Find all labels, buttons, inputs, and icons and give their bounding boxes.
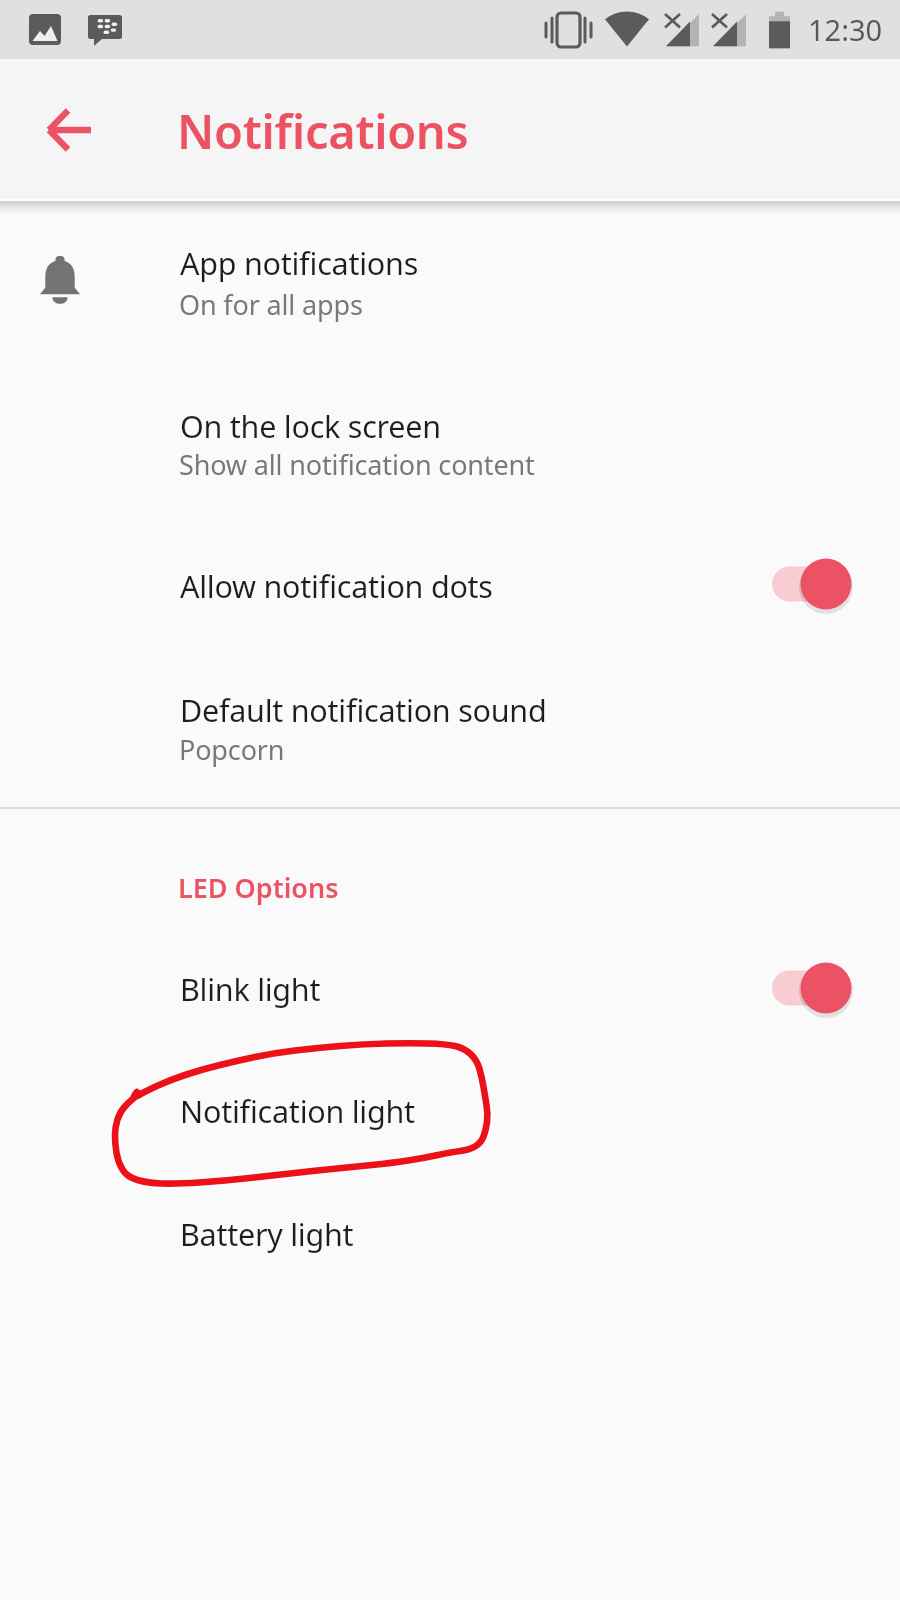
staticText: Allow notification dots bbox=[180, 565, 493, 607]
staticText: Notification light bbox=[180, 1090, 415, 1132]
button[interactable]: Default notification sound bbox=[0, 646, 900, 807]
button[interactable]: On the lock screen bbox=[0, 362, 900, 523]
staticText: On the lock screen bbox=[180, 405, 441, 447]
staticText: Blink light bbox=[180, 968, 321, 1010]
button[interactable]: App notifications bbox=[0, 201, 900, 362]
staticText: Battery light bbox=[180, 1213, 354, 1255]
button[interactable]: Battery light bbox=[0, 1173, 900, 1296]
staticText: Popcorn bbox=[179, 731, 285, 768]
staticText: LED Options bbox=[178, 869, 339, 906]
staticText: Notifications bbox=[177, 99, 469, 163]
button[interactable]: Back bbox=[22, 82, 118, 178]
button[interactable]: Blink light bbox=[0, 927, 900, 1050]
staticText: Show all notification content bbox=[179, 446, 535, 483]
staticText: On for all apps bbox=[179, 286, 363, 323]
staticText: Default notification sound bbox=[180, 689, 547, 731]
staticText: App notifications bbox=[180, 242, 419, 284]
staticText: 12:30 bbox=[808, 10, 883, 49]
button[interactable]: Notification light bbox=[0, 1050, 900, 1173]
button[interactable]: Allow notification dots bbox=[0, 523, 900, 646]
